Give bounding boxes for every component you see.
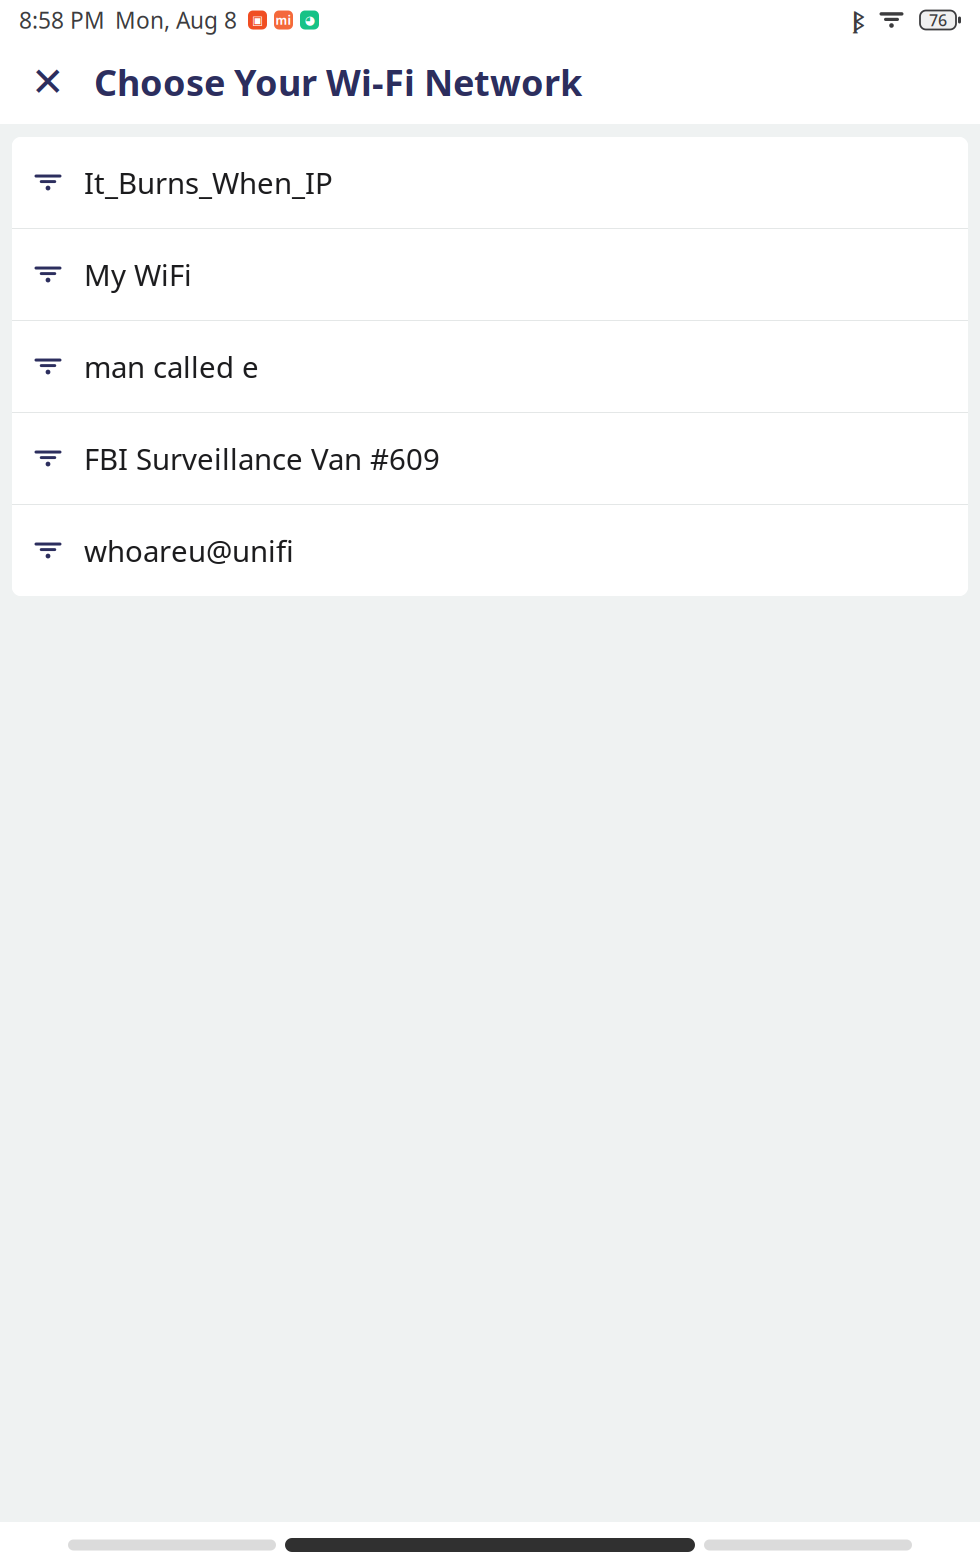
staticText: FBI Surveillance Van #609 <box>84 439 440 478</box>
staticText: ◕ <box>304 13 314 27</box>
staticText: Mon, Aug 8 <box>115 5 237 35</box>
staticText: It_Burns_When_IP <box>84 163 333 202</box>
staticText: ▣ <box>252 13 263 27</box>
button[interactable]: Choose Your Wi-Fi Network <box>94 58 582 106</box>
staticText: man called e <box>84 347 259 386</box>
staticText: ✕ <box>31 59 65 105</box>
staticText: whoareu@unifi <box>84 531 294 570</box>
button[interactable]: Close <box>20 54 76 110</box>
button[interactable]: FBI Surveillance Van #609 <box>12 413 968 504</box>
button[interactable]: whoareu@unifi <box>12 505 968 596</box>
staticText: ᛒ <box>852 5 864 35</box>
staticText: Choose Your Wi-Fi Network <box>94 58 582 106</box>
button[interactable]: Home <box>285 1538 695 1552</box>
button[interactable]: My WiFi <box>12 229 968 320</box>
staticText: 8:58 PM <box>19 5 105 35</box>
button[interactable]: man called e <box>12 321 968 412</box>
button[interactable]: Recent apps <box>704 1539 912 1550</box>
staticText: My WiFi <box>84 255 192 294</box>
button[interactable]: It_Burns_When_IP <box>12 137 968 228</box>
button[interactable]: Back <box>68 1539 276 1550</box>
staticText: 76 <box>929 9 947 31</box>
staticText: mi <box>275 12 291 28</box>
